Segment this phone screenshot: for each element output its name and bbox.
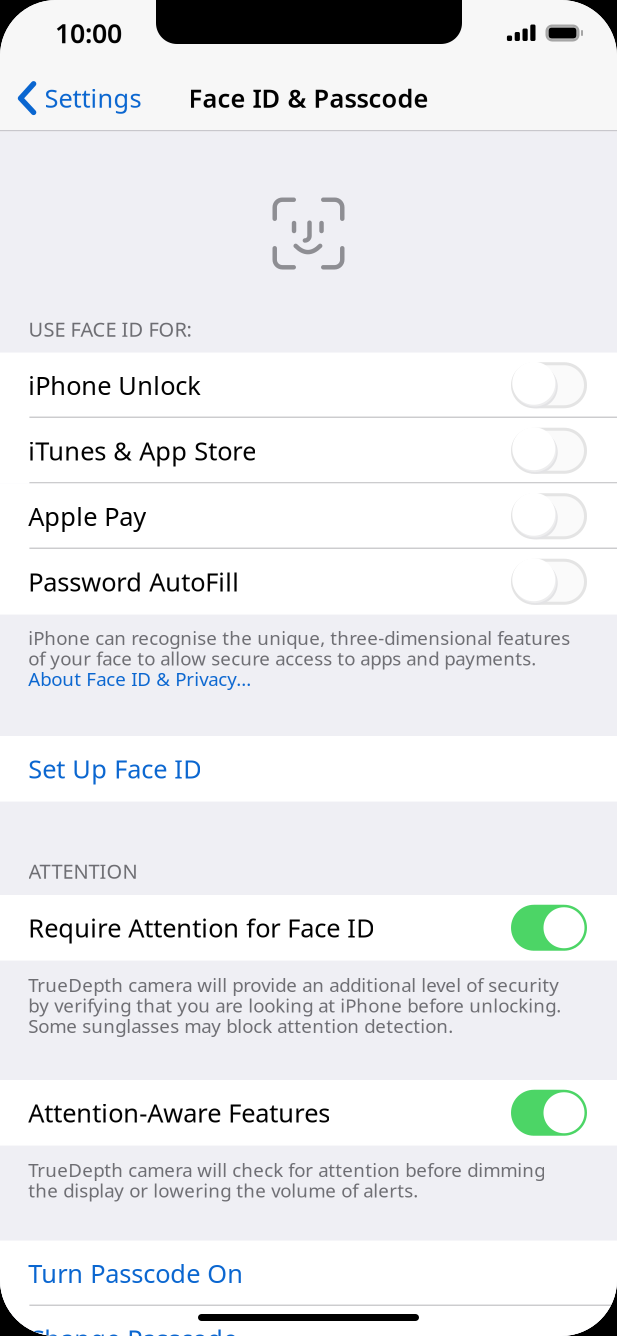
button[interactable]: Toggle, on <box>511 1090 587 1136</box>
staticText: ATTENTION <box>28 858 137 884</box>
staticText: Apple Pay <box>28 499 146 533</box>
staticText: Change Passcode <box>28 1322 237 1336</box>
staticText: Require Attention for Face ID <box>28 911 374 944</box>
button[interactable]: Toggle, off <box>511 362 587 408</box>
staticText: of your face to allow secure access to a… <box>28 646 536 671</box>
staticText: Attention-Aware Features <box>28 1096 330 1129</box>
staticText: Some sunglasses may block attention dete… <box>28 1013 453 1038</box>
staticText: by verifying that you are looking at iPh… <box>28 993 561 1018</box>
staticText: TrueDepth camera will check for attentio… <box>28 1157 545 1182</box>
staticText: TrueDepth camera will provide an additio… <box>28 972 559 997</box>
button[interactable]: Toggle, off <box>511 428 587 474</box>
button[interactable]: Turn Passcode On <box>0 1240 617 1306</box>
button[interactable]: Toggle, off <box>511 493 587 539</box>
button[interactable]: Set Up Face ID <box>0 736 617 801</box>
staticText: Settings <box>44 81 141 115</box>
staticText: 10:00 <box>55 15 122 51</box>
staticText: iPhone Unlock <box>28 368 201 402</box>
button[interactable]: Apple Pay <box>0 483 617 549</box>
button[interactable]: Attention-Aware Features <box>0 1080 617 1145</box>
staticText: USE FACE ID FOR: <box>28 316 191 342</box>
button[interactable]: Password AutoFill <box>0 549 617 614</box>
button[interactable]: Toggle, on <box>511 905 587 951</box>
staticText: Face ID & Passcode <box>188 81 428 115</box>
button[interactable]: iTunes & App Store <box>0 418 617 483</box>
staticText: the display or lowering the volume of al… <box>28 1178 418 1203</box>
staticText: iTunes & App Store <box>28 434 256 467</box>
button[interactable]: Require Attention for Face ID <box>0 895 617 960</box>
button[interactable]: Toggle, off <box>511 559 587 605</box>
staticText: Password AutoFill <box>28 565 239 598</box>
button[interactable]: iPhone Unlock <box>0 352 617 418</box>
staticText: About Face ID & Privacy... <box>28 666 251 691</box>
staticText: Turn Passcode On <box>28 1256 243 1290</box>
staticText: Set Up Face ID <box>28 752 201 785</box>
button[interactable]: Settings <box>0 66 153 130</box>
button[interactable]: Change Passcode <box>0 1306 617 1336</box>
button[interactable]: About Face ID & Privacy... <box>28 668 617 689</box>
staticText: iPhone can recognise the unique, three-d… <box>28 625 570 650</box>
